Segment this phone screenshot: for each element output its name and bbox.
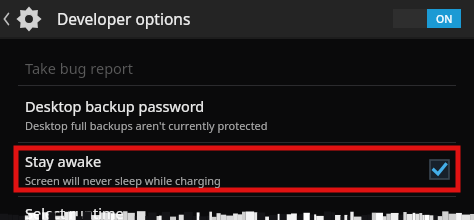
staticText: ON [436,12,453,26]
button[interactable]: Select runtime [0,197,474,220]
button[interactable]: Developer options on [393,9,474,28]
staticText: Stay awake [25,151,102,171]
staticText: Desktop backup password [25,96,205,116]
staticText: Desktop full backups aren't currently pr… [25,118,268,133]
staticText: Screen will never sleep while charging [25,173,221,188]
staticText: Select runtime [25,203,124,220]
staticText: Take bug report [25,58,134,78]
button[interactable]: Stay awake [16,148,458,190]
button[interactable]: Stay awake, checked [430,160,449,179]
button[interactable]: Take bug report [0,50,474,85]
staticText: Developer options [57,8,393,29]
button[interactable]: Navigate up [0,0,48,37]
button[interactable]: Desktop backup password [0,94,474,139]
